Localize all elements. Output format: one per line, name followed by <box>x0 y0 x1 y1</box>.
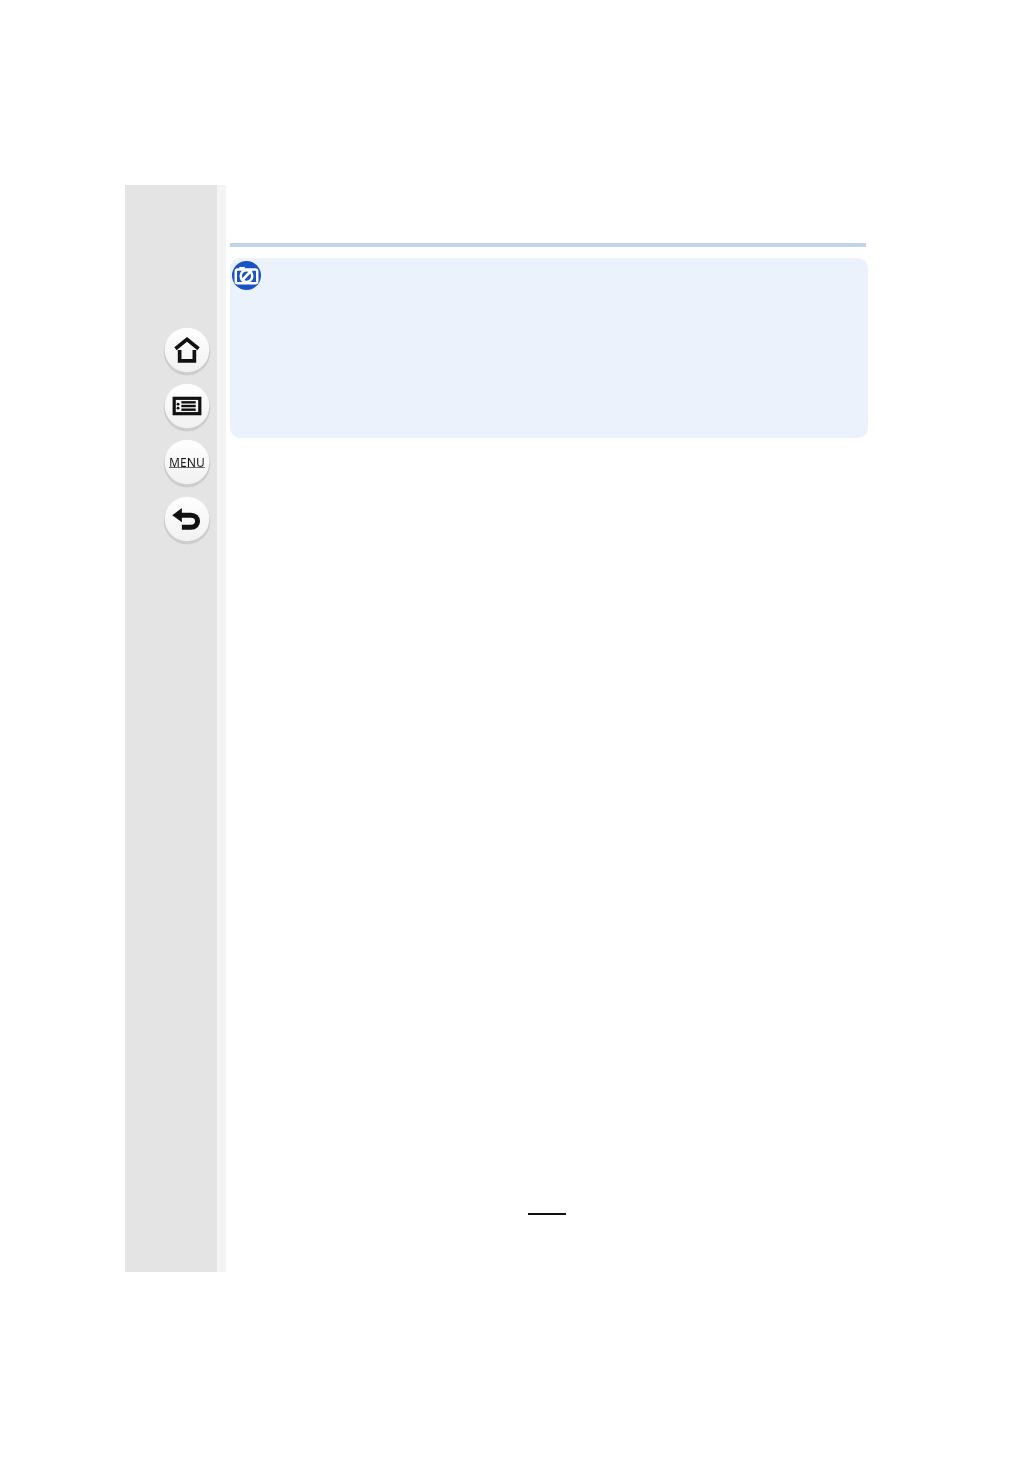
button[interactable] <box>230 258 868 438</box>
staticText: MENU <box>169 454 205 470</box>
button[interactable]: Back <box>163 495 211 543</box>
other: Not available <box>232 261 261 290</box>
button[interactable]: Menu <box>163 438 211 486</box>
button[interactable]: Home <box>163 326 211 374</box>
button[interactable]: Playback list <box>163 382 211 430</box>
